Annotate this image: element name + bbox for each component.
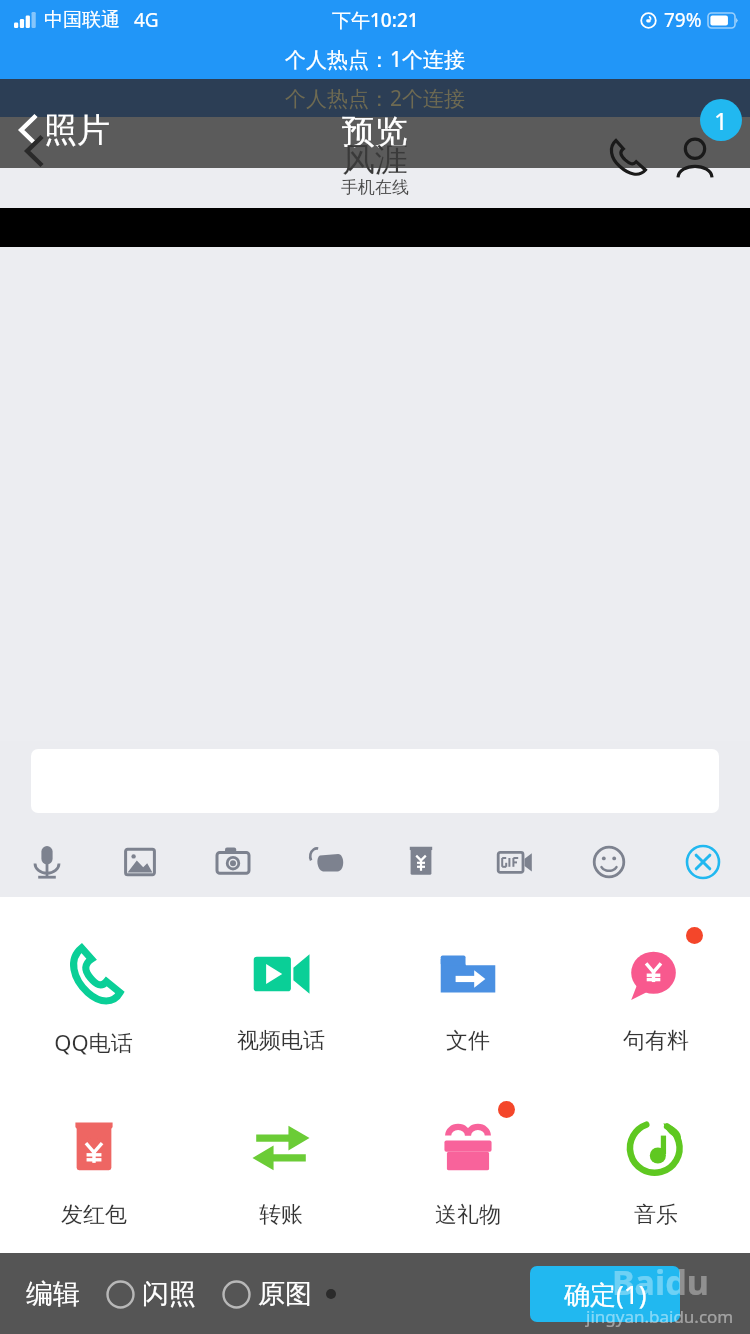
staticText: 4G [134,7,159,33]
staticText: 文件 [446,1027,490,1055]
staticText: 手机在线 [341,177,409,198]
button[interactable]: 编辑 [22,1273,84,1315]
staticText: 发红包 [61,1201,127,1229]
staticText: jingyan.baidu.com [586,1305,734,1328]
button[interactable]: 闪照 [102,1273,200,1315]
staticText: 个人热点：1个连接 [285,45,466,74]
button[interactable]: 转账 [187,1101,374,1233]
button[interactable]: 句有料 [562,927,750,1059]
staticText: 视频电话 [237,1027,325,1055]
button[interactable]: QQ电话 [0,927,187,1061]
button[interactable]: GIF [468,827,562,897]
button[interactable]: Photo [93,827,186,897]
button[interactable]: Close [656,827,750,897]
button[interactable]: 确定(1) [530,1266,680,1322]
button[interactable]: Shake [280,827,374,897]
button[interactable]: 发红包 [0,1101,187,1233]
button[interactable]: Camera [186,827,280,897]
button[interactable]: 送礼物 [374,1101,562,1233]
staticText: 闪照 [142,1277,196,1311]
button[interactable]: Back [14,107,114,153]
staticText: 个人热点：2个连接 [285,84,466,113]
staticText: 照片 [44,109,110,151]
button[interactable]: 音乐 [562,1101,750,1233]
staticText: 风涯 [342,139,408,181]
other: Back [18,113,38,147]
button[interactable]: 1 [700,99,742,141]
button[interactable]: Emoji [562,827,656,897]
button[interactable]: Voice [0,827,93,897]
staticText: 原图 [258,1277,312,1311]
staticText: 1 [714,104,728,137]
button[interactable]: Red packet [374,827,468,897]
staticText: 中国联通 [44,8,120,32]
staticText: 编辑 [26,1277,80,1311]
button[interactable]: 视频电话 [187,927,374,1059]
staticText: QQ电话 [54,1027,133,1057]
button[interactable]: 文件 [374,927,562,1059]
staticText: 预览 [342,111,408,153]
staticText: 句有料 [623,1027,689,1055]
staticText: 79% [664,7,702,33]
staticText: 音乐 [634,1201,678,1229]
button[interactable]: Call [604,135,650,181]
staticText: 转账 [259,1201,303,1229]
button[interactable]: 原图 [218,1273,316,1315]
other: Back [24,134,44,168]
staticText: 确定(1) [564,1276,647,1312]
staticText: Baidu [612,1259,709,1305]
staticText: 送礼物 [435,1201,501,1229]
staticText: 下午10:21 [332,7,419,33]
button[interactable]: Profile [672,135,718,181]
